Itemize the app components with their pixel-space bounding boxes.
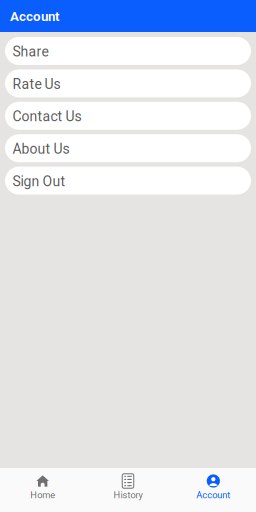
button[interactable]: Contact Us [5,102,251,130]
staticText: Home [30,489,55,500]
button[interactable]: Home [0,468,85,512]
staticText: Share [12,43,48,60]
button[interactable]: Account [171,468,256,512]
staticText: History [113,489,142,500]
button[interactable]: History [85,468,171,512]
staticText: Sign Out [12,173,65,189]
button[interactable]: Rate Us [5,69,251,97]
button[interactable]: About Us [5,134,251,162]
staticText: Account [196,489,230,500]
staticText: Account [10,9,60,24]
staticText: Rate Us [12,76,60,92]
staticText: About Us [12,141,69,157]
button[interactable]: Sign Out [5,167,251,195]
button[interactable]: Share [5,37,251,65]
staticText: Contact Us [12,108,81,125]
